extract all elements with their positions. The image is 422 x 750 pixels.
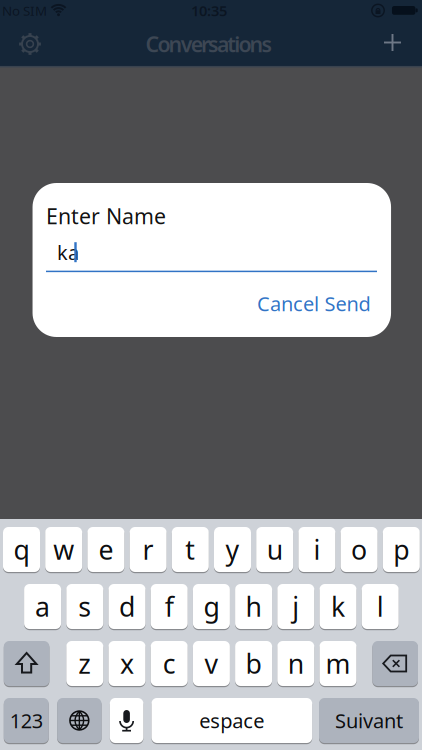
staticText: n bbox=[288, 646, 304, 681]
staticText: r bbox=[143, 532, 154, 567]
staticText: c bbox=[163, 646, 176, 681]
button[interactable]: s bbox=[66, 584, 103, 629]
button[interactable]: c bbox=[151, 641, 188, 686]
staticText: b bbox=[246, 646, 262, 681]
button[interactable]: Suivant bbox=[319, 698, 419, 743]
button[interactable]: Enter Name bbox=[46, 238, 377, 273]
button[interactable]: p bbox=[383, 527, 420, 572]
button[interactable]: m bbox=[319, 641, 356, 686]
staticText: h bbox=[246, 589, 262, 624]
button[interactable]: Settings bbox=[8, 22, 52, 66]
staticText: e bbox=[98, 532, 113, 567]
staticText: q bbox=[13, 532, 29, 567]
button[interactable]: y bbox=[214, 527, 251, 572]
staticText: Conversations bbox=[145, 30, 273, 58]
staticText: m bbox=[325, 646, 350, 681]
staticText: No SIM bbox=[2, 2, 47, 19]
staticText: t bbox=[185, 532, 195, 567]
button[interactable]: u bbox=[256, 527, 293, 572]
staticText: a bbox=[35, 589, 50, 624]
staticText: z bbox=[78, 646, 91, 681]
button[interactable]: q bbox=[3, 527, 40, 572]
button[interactable]: espace bbox=[151, 698, 312, 743]
button[interactable]: Send bbox=[324, 290, 370, 317]
button[interactable]: t bbox=[172, 527, 209, 572]
staticText: l bbox=[377, 589, 384, 624]
staticText: j bbox=[292, 589, 299, 624]
button[interactable]: Numbers bbox=[4, 698, 49, 743]
staticText: Enter Name bbox=[46, 202, 166, 230]
button[interactable]: e bbox=[87, 527, 124, 572]
button[interactable]: k bbox=[319, 584, 356, 629]
button[interactable]: b bbox=[235, 641, 272, 686]
staticText: ka bbox=[57, 239, 79, 265]
button[interactable]: g bbox=[193, 584, 230, 629]
staticText: Send bbox=[324, 290, 370, 317]
button[interactable]: h bbox=[235, 584, 272, 629]
staticText: y bbox=[225, 532, 239, 567]
button[interactable]: w bbox=[45, 527, 82, 572]
button[interactable]: o bbox=[341, 527, 378, 572]
button[interactable]: Delete bbox=[372, 641, 418, 686]
staticText: w bbox=[53, 532, 74, 567]
staticText: u bbox=[267, 532, 283, 567]
staticText: g bbox=[203, 589, 219, 624]
button[interactable]: a bbox=[24, 584, 61, 629]
staticText: 10:35 bbox=[191, 1, 227, 20]
button[interactable]: n bbox=[277, 641, 314, 686]
button[interactable]: New conversation bbox=[370, 20, 414, 64]
button[interactable]: Shift bbox=[4, 641, 49, 686]
staticText: s bbox=[78, 589, 91, 624]
button[interactable]: r bbox=[130, 527, 167, 572]
staticText: p bbox=[393, 532, 409, 567]
staticText: 123 bbox=[10, 707, 43, 734]
button[interactable]: Cancel bbox=[257, 290, 319, 317]
staticText: v bbox=[204, 646, 218, 681]
button[interactable]: d bbox=[108, 584, 145, 629]
staticText: i bbox=[313, 532, 320, 567]
staticText: f bbox=[165, 589, 174, 624]
staticText: espace bbox=[199, 707, 264, 734]
staticText: d bbox=[119, 589, 135, 624]
button[interactable]: Dictate bbox=[110, 698, 143, 743]
staticText: x bbox=[120, 646, 134, 681]
button[interactable]: x bbox=[108, 641, 145, 686]
button[interactable]: l bbox=[362, 584, 399, 629]
button[interactable]: Next keyboard bbox=[57, 698, 101, 743]
button[interactable]: i bbox=[298, 527, 335, 572]
button[interactable]: f bbox=[151, 584, 188, 629]
staticText: k bbox=[331, 589, 345, 624]
button[interactable]: v bbox=[193, 641, 230, 686]
button[interactable]: j bbox=[277, 584, 314, 629]
button[interactable]: z bbox=[66, 641, 103, 686]
staticText: o bbox=[351, 532, 367, 567]
staticText: Cancel bbox=[257, 290, 319, 317]
staticText: Suivant bbox=[335, 707, 403, 734]
